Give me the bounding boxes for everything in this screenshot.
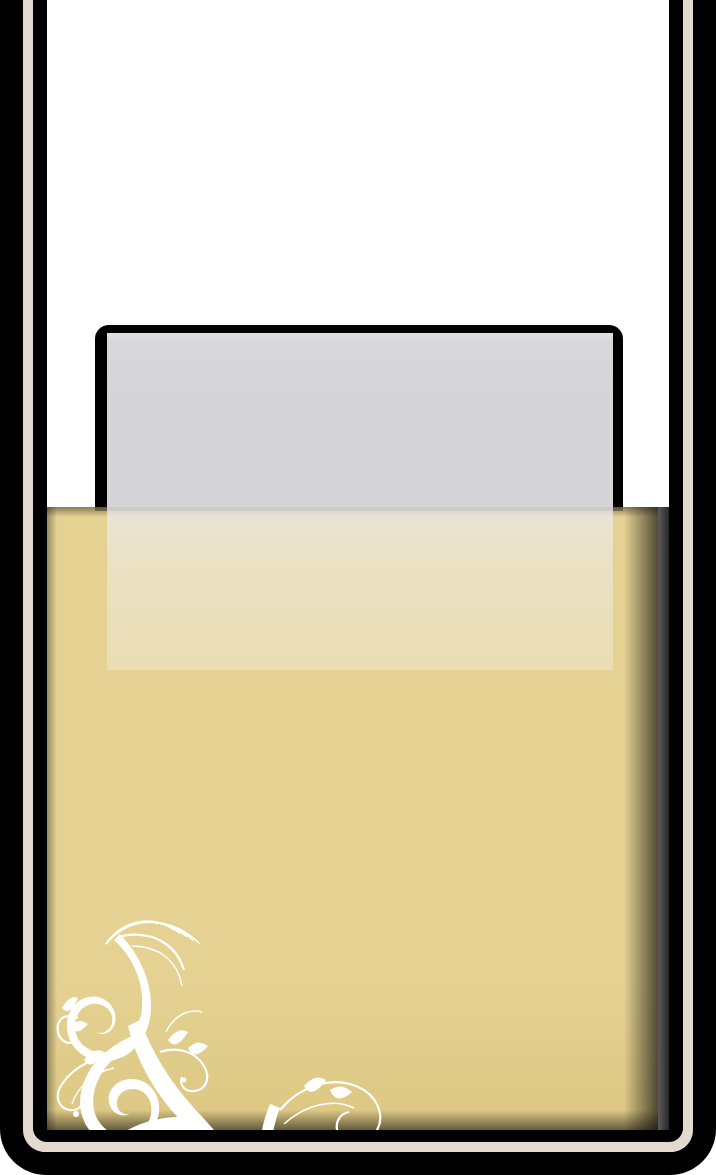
button[interactable]: Document preview	[0, 0, 716, 1175]
